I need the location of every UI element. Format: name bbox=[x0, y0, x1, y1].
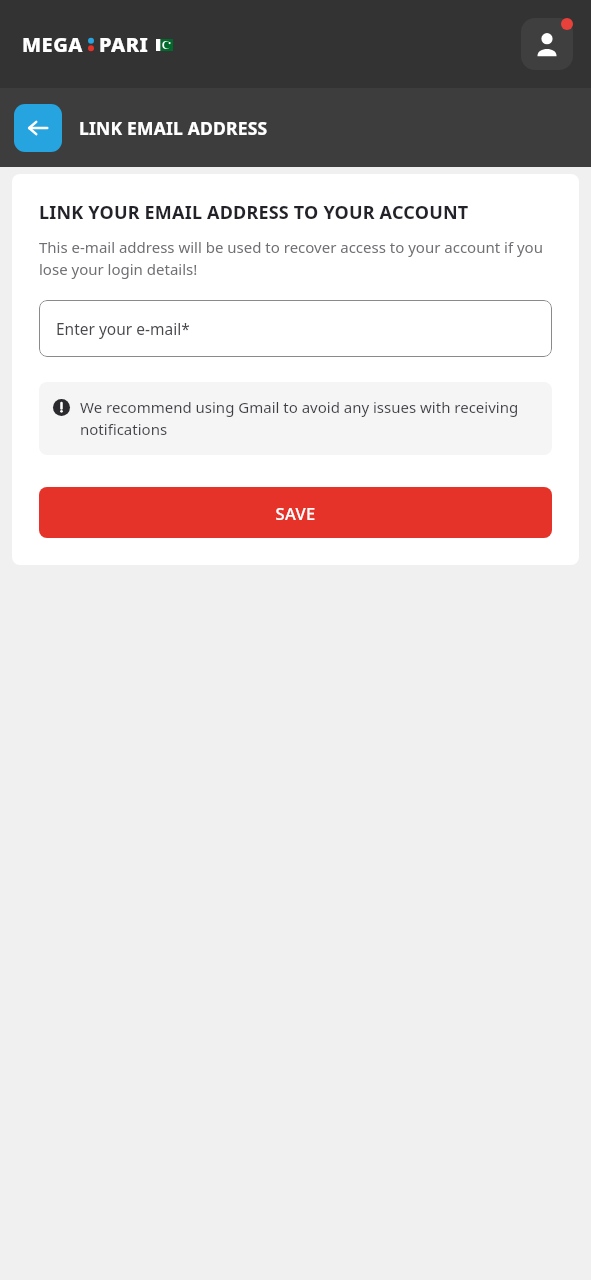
button[interactable]: MEGA bbox=[22, 31, 173, 58]
staticText: PARI bbox=[99, 31, 149, 58]
staticText: LINK EMAIL ADDRESS bbox=[79, 116, 268, 140]
button[interactable]: Account bbox=[521, 18, 573, 70]
staticText: We recommend using Gmail to avoid any is… bbox=[80, 397, 538, 440]
staticText: LINK YOUR EMAIL ADDRESS TO YOUR ACCOUNT bbox=[39, 200, 469, 225]
staticText: SAVE bbox=[275, 502, 316, 524]
staticText: MEGA bbox=[22, 31, 83, 58]
button[interactable]: Enter your e-mail* bbox=[39, 300, 552, 357]
button[interactable]: SAVE bbox=[39, 487, 552, 538]
staticText: Enter your e-mail* bbox=[56, 318, 190, 339]
staticText: This e-mail address will be used to reco… bbox=[39, 237, 552, 280]
button[interactable]: Back bbox=[14, 104, 62, 152]
